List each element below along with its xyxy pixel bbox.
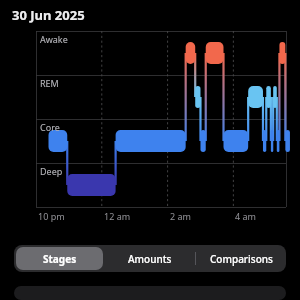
staticText: Comparisons [210, 252, 273, 266]
staticText: 2 am [170, 210, 191, 222]
staticText: 12 am [104, 210, 131, 222]
staticText: Core [40, 121, 60, 133]
staticText: Stages [43, 252, 77, 266]
staticText: Amounts [128, 252, 172, 266]
staticText: 30 Jun 2025 [12, 6, 85, 24]
button[interactable]: Amounts [107, 247, 193, 270]
staticText: Awake [40, 33, 68, 45]
staticText: 4 am [235, 210, 256, 222]
staticText: 10 pm [38, 210, 65, 222]
button[interactable]: Comparisons [198, 247, 284, 270]
button[interactable]: Stages [16, 247, 103, 270]
staticText: REM [40, 77, 59, 89]
staticText: Deep [40, 165, 63, 177]
